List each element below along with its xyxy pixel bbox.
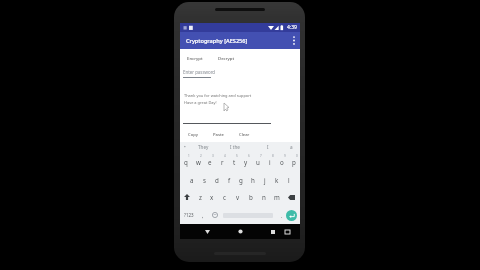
staticText: b bbox=[249, 193, 253, 201]
staticText: Paste bbox=[213, 132, 224, 138]
staticText: Encrypt bbox=[187, 55, 203, 61]
staticText: z bbox=[199, 193, 202, 201]
button[interactable]: k bbox=[271, 170, 283, 188]
button[interactable]: e bbox=[204, 152, 216, 170]
staticText: e bbox=[208, 158, 212, 166]
staticText: They bbox=[198, 144, 209, 150]
staticText: f bbox=[228, 176, 231, 184]
staticText: c bbox=[223, 193, 226, 201]
staticText: Thank you for watching and support Have … bbox=[184, 93, 252, 105]
staticText: a bbox=[290, 144, 293, 150]
staticText: 7 bbox=[260, 154, 262, 158]
staticText: y bbox=[244, 158, 248, 166]
staticText: m bbox=[274, 193, 280, 201]
button[interactable]: . bbox=[277, 206, 286, 224]
button[interactable]: c bbox=[218, 188, 231, 206]
button[interactable]: • bbox=[180, 142, 189, 152]
button[interactable]: Encrypt bbox=[181, 49, 209, 66]
button[interactable]: s bbox=[198, 170, 211, 188]
button[interactable]: , bbox=[197, 206, 209, 224]
staticText: I the bbox=[230, 144, 240, 150]
button[interactable]: q bbox=[180, 152, 192, 170]
button[interactable]: a bbox=[185, 170, 198, 188]
staticText: Cryptography [AES256] bbox=[186, 37, 248, 45]
staticText: d bbox=[215, 176, 219, 184]
button[interactable]: d bbox=[211, 170, 223, 188]
staticText: t bbox=[233, 158, 236, 166]
staticText: 6 bbox=[248, 154, 250, 158]
staticText: o bbox=[280, 158, 284, 166]
button[interactable]: Recents bbox=[268, 224, 278, 239]
staticText: h bbox=[251, 176, 255, 184]
staticText: 8 bbox=[272, 154, 274, 158]
button[interactable]: Backspace bbox=[283, 188, 300, 206]
staticText: 0 bbox=[296, 154, 298, 158]
button[interactable]: I the bbox=[217, 142, 252, 152]
staticText: s bbox=[203, 176, 206, 184]
staticText: 4 bbox=[224, 154, 226, 158]
button[interactable]: l bbox=[283, 170, 295, 188]
button[interactable]: Decrypt bbox=[212, 49, 240, 66]
button[interactable]: x bbox=[206, 188, 218, 206]
button[interactable]: i bbox=[264, 152, 276, 170]
button[interactable]: p bbox=[288, 152, 300, 170]
staticText: . bbox=[281, 212, 283, 219]
staticText: q bbox=[184, 158, 188, 166]
staticText: x bbox=[210, 193, 214, 201]
staticText: l bbox=[288, 176, 290, 184]
button[interactable]: r bbox=[216, 152, 228, 170]
button[interactable]: They bbox=[189, 142, 217, 152]
button[interactable]: b bbox=[244, 188, 257, 206]
button[interactable]: o bbox=[276, 152, 288, 170]
staticText: a bbox=[190, 176, 194, 184]
button[interactable]: Paste bbox=[207, 128, 229, 142]
staticText: Clear bbox=[239, 132, 250, 138]
staticText: 9 bbox=[284, 154, 286, 158]
button[interactable]: Emoji bbox=[209, 206, 221, 224]
staticText: • bbox=[184, 144, 186, 150]
button[interactable]: Copy bbox=[182, 128, 204, 142]
button[interactable]: f bbox=[223, 170, 235, 188]
button[interactable]: j bbox=[259, 170, 271, 188]
staticText: g bbox=[239, 176, 243, 184]
staticText: , bbox=[202, 212, 204, 219]
button[interactable]: Home bbox=[235, 224, 245, 239]
button[interactable]: I bbox=[252, 142, 283, 152]
button[interactable]: Back bbox=[202, 224, 212, 239]
staticText: 4:39 bbox=[287, 24, 297, 31]
staticText: u bbox=[256, 158, 260, 166]
staticText: i bbox=[269, 158, 271, 166]
staticText: Decrypt bbox=[218, 55, 235, 61]
button[interactable]: z bbox=[194, 188, 206, 206]
button[interactable]: ?123 bbox=[180, 206, 197, 224]
staticText: Copy bbox=[188, 132, 198, 138]
button[interactable]: m bbox=[270, 188, 283, 206]
button[interactable]: u bbox=[252, 152, 264, 170]
button[interactable]: y bbox=[240, 152, 252, 170]
staticText: k bbox=[275, 176, 279, 184]
button[interactable]: t bbox=[228, 152, 240, 170]
staticText: j bbox=[264, 176, 266, 184]
button[interactable]: More options bbox=[288, 32, 300, 49]
button[interactable]: w bbox=[192, 152, 204, 170]
button[interactable]: g bbox=[235, 170, 247, 188]
button[interactable]: Shift bbox=[180, 188, 194, 206]
button[interactable]: Clear bbox=[233, 128, 255, 142]
staticText: w bbox=[196, 158, 201, 166]
button[interactable]: Enter bbox=[286, 210, 297, 221]
button[interactable]: a bbox=[283, 142, 300, 152]
staticText: 1 bbox=[188, 154, 190, 158]
staticText: 2 bbox=[200, 154, 202, 158]
button[interactable]: n bbox=[257, 188, 270, 206]
button[interactable]: h bbox=[247, 170, 259, 188]
staticText: p bbox=[292, 158, 296, 166]
staticText: I bbox=[267, 144, 269, 150]
button[interactable]: Hide keyboard bbox=[282, 224, 292, 239]
staticText: n bbox=[262, 193, 266, 201]
staticText: ?123 bbox=[184, 212, 194, 218]
button[interactable]: v bbox=[231, 188, 244, 206]
staticText: v bbox=[236, 193, 240, 201]
staticText: Enter password bbox=[183, 69, 216, 75]
staticText: r bbox=[221, 158, 224, 166]
